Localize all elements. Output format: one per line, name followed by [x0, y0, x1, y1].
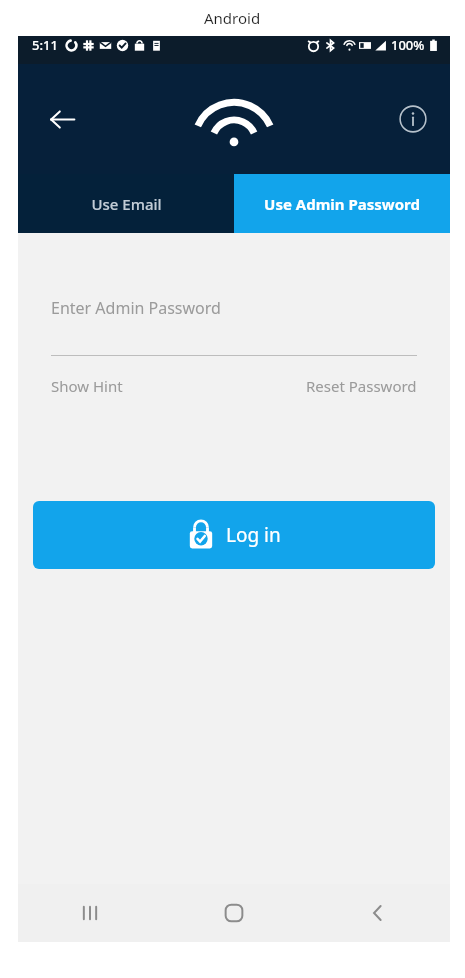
button[interactable]: Info [390, 96, 436, 142]
button[interactable]: Reset Password [306, 372, 417, 400]
staticText: Reset Password [306, 376, 417, 396]
button[interactable]: Back [38, 95, 86, 143]
button[interactable]: Enter Admin Password [18, 285, 450, 331]
staticText: Use Admin Password [264, 194, 420, 214]
staticText: Enter Admin Password [51, 297, 221, 319]
staticText: Show Hint [51, 376, 123, 396]
button[interactable]: Back [306, 884, 450, 942]
staticText: Android [204, 8, 261, 28]
button[interactable]: Home [162, 884, 306, 942]
button[interactable]: Use Email [18, 174, 234, 233]
staticText: Use Email [91, 194, 162, 214]
staticText: Log in [226, 522, 281, 548]
button[interactable]: Recent apps [18, 884, 162, 942]
button[interactable]: Use Admin Password [234, 174, 450, 233]
staticText: 5:11 [32, 36, 58, 54]
button[interactable]: Log in [33, 501, 435, 569]
staticText: 100% [391, 36, 425, 54]
button[interactable]: Show Hint [51, 372, 123, 400]
